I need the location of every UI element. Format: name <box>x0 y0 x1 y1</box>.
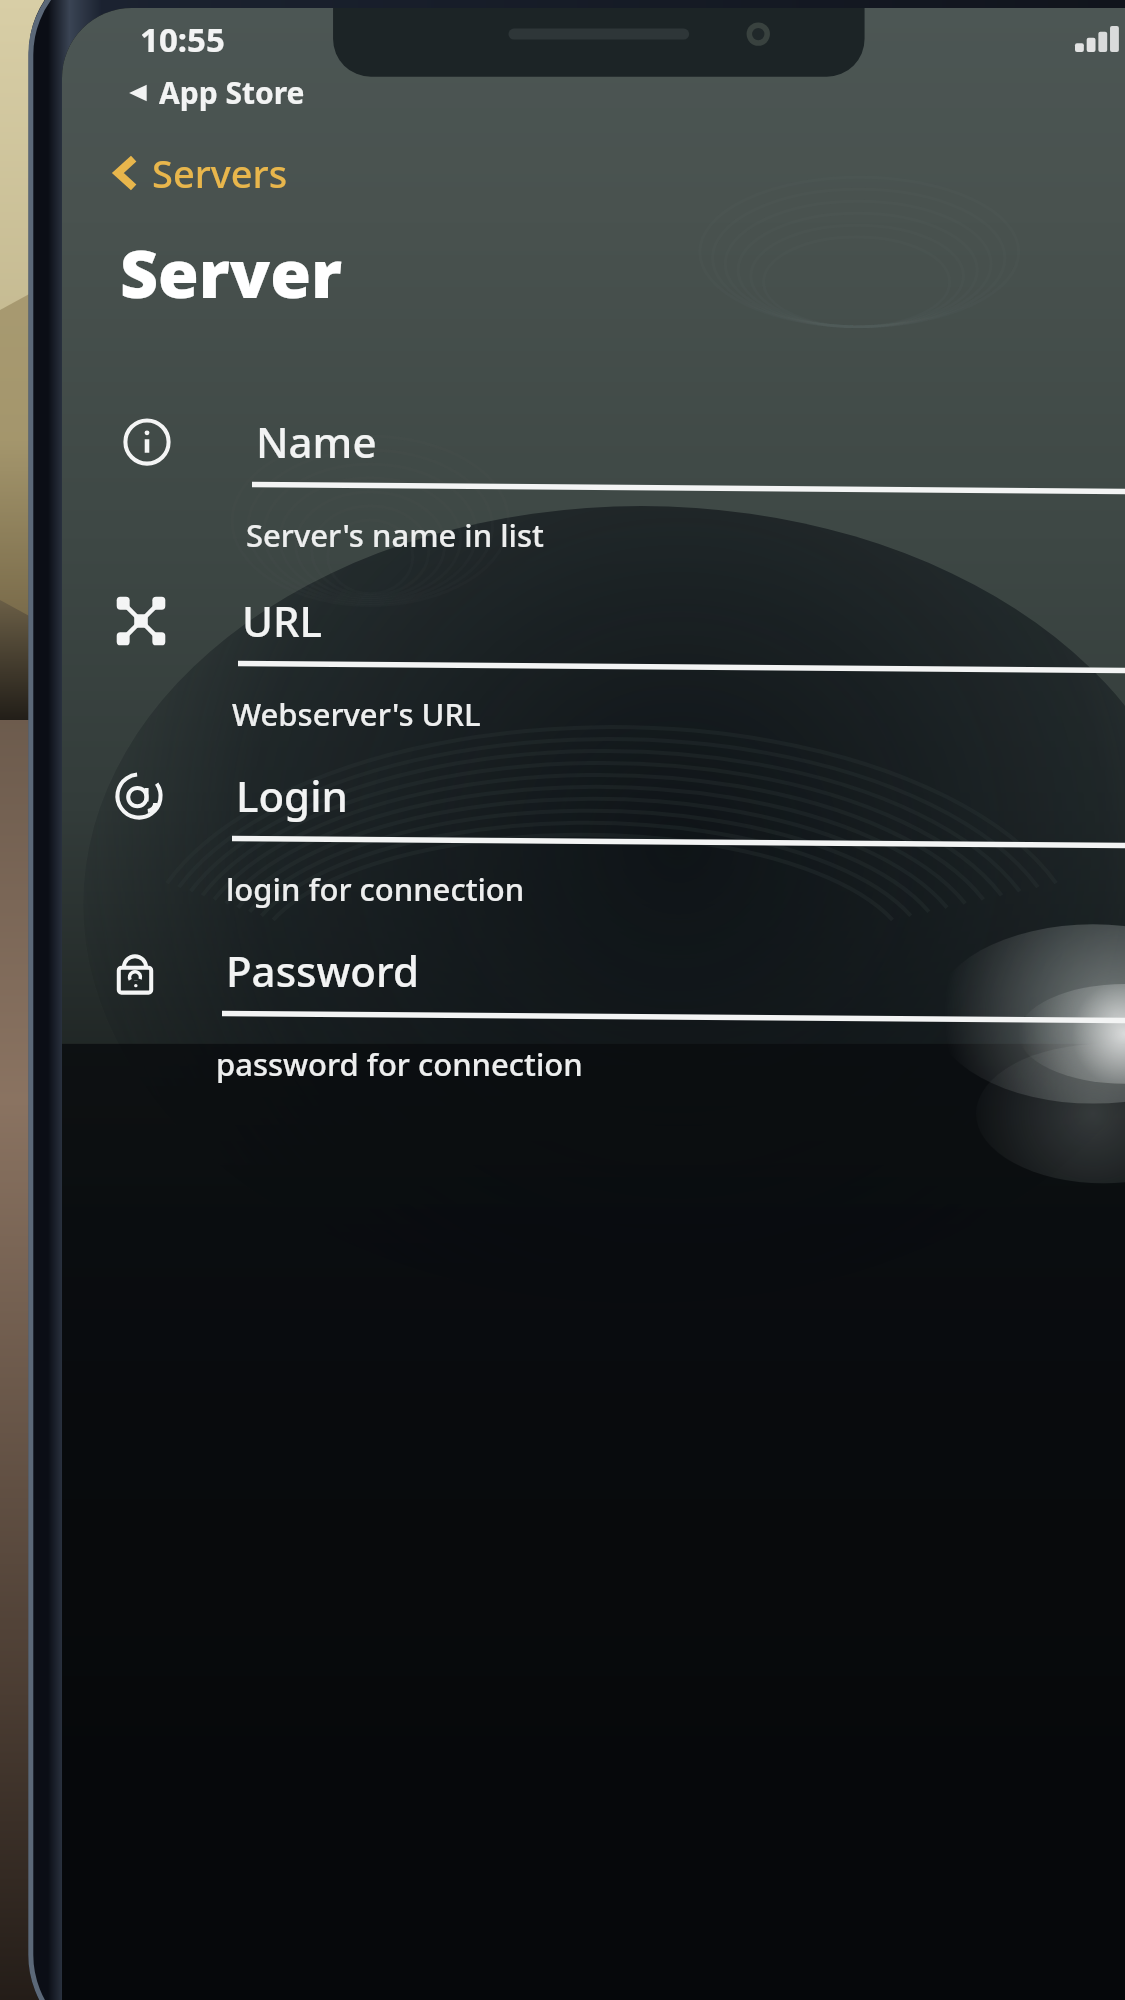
button[interactable]: Name <box>62 413 1125 556</box>
staticText: Password <box>226 942 419 999</box>
staticText: 10:55 <box>140 17 225 62</box>
button[interactable]: URL <box>62 592 1125 735</box>
staticText: Login <box>236 767 348 824</box>
staticText: Server <box>120 227 342 317</box>
staticText: App Store <box>159 72 305 113</box>
other: Password <box>108 944 162 998</box>
other: Name <box>120 415 174 469</box>
other: Login <box>112 769 166 823</box>
button[interactable]: Back <box>106 141 296 205</box>
other: URL <box>114 594 168 648</box>
staticText: login for connection <box>226 868 525 910</box>
staticText: Servers <box>152 147 288 199</box>
staticText: Server's name in list <box>246 514 544 556</box>
staticText: URL <box>242 592 322 649</box>
other: Back <box>114 153 138 193</box>
button[interactable]: App Store <box>122 70 311 115</box>
button[interactable]: Password <box>62 942 1125 1085</box>
staticText: Webserver's URL <box>232 693 481 735</box>
staticText: Name <box>256 413 377 470</box>
button[interactable]: Login <box>62 767 1125 910</box>
staticText: password for connection <box>216 1043 583 1085</box>
